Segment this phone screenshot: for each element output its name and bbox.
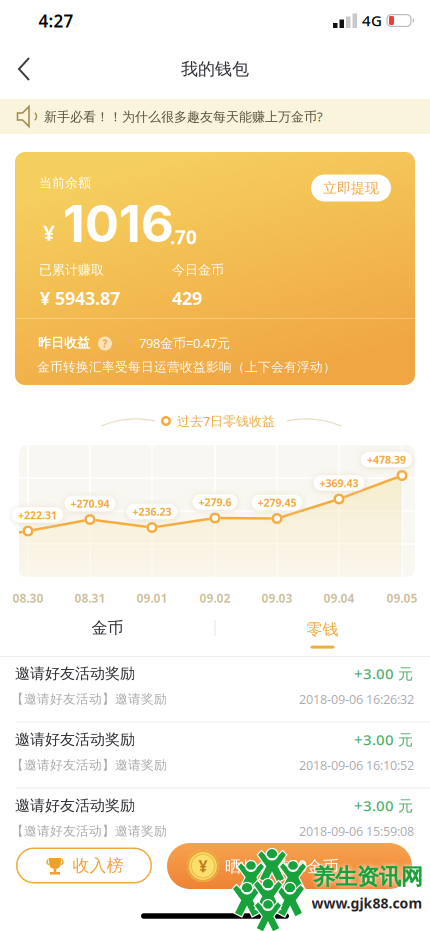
staticText: 09.03: [261, 590, 292, 606]
staticText: 金币: [91, 618, 123, 638]
staticText: 零钱: [306, 619, 338, 640]
button[interactable]: 邀请好友活动奖励: [0, 0, 430, 931]
staticText: +369.43: [319, 476, 358, 490]
staticText: ¥: [198, 855, 207, 877]
button[interactable]: 收入榜: [16, 847, 152, 883]
staticText: 09.01: [136, 590, 167, 606]
staticText: 邀请好友活动奖励: [15, 730, 135, 749]
staticText: 09.05: [386, 590, 417, 606]
staticText: 已累计赚取: [39, 262, 104, 278]
staticText: +236.23: [132, 504, 171, 519]
staticText: 2018-09-06 16:26:32: [299, 690, 414, 708]
staticText: 新手必看！！为什么很多趣友每天能赚上万金币?: [44, 108, 323, 125]
staticText: 昨日收益: [38, 335, 90, 351]
staticText: www.gjk88.com: [311, 893, 422, 913]
staticText: ?: [102, 337, 107, 350]
staticText: 09.04: [323, 590, 354, 606]
staticText: .70: [170, 224, 197, 250]
staticText: ¥ 5943.87: [40, 286, 120, 310]
staticText: 1016: [63, 193, 174, 254]
button[interactable]: 金币: [17, 610, 197, 646]
staticText: 养生资讯网: [313, 863, 423, 891]
staticText: 2018-09-06 16:10:52: [299, 756, 414, 774]
staticText: 4:27: [38, 9, 73, 33]
button[interactable]: 立即提现: [311, 174, 391, 201]
button[interactable]: 邀请好友活动奖励: [0, 0, 430, 931]
staticText: 邀请好友活动奖励: [15, 796, 135, 815]
staticText: 【邀请好友活动】邀请奖励: [11, 691, 167, 707]
staticText: +478.39: [367, 452, 406, 467]
staticText: +3.00 元: [354, 795, 413, 816]
staticText: 08.31: [74, 590, 105, 606]
staticText: 当前余额: [39, 175, 91, 191]
button[interactable]: Help: [98, 336, 112, 350]
staticText: 【邀请好友活动】邀请奖励: [11, 757, 167, 773]
staticText: 邀请好友活动奖励: [15, 664, 135, 683]
staticText: 收入榜: [72, 855, 123, 876]
staticText: +222.31: [18, 508, 57, 522]
staticText: ¥: [43, 218, 55, 247]
staticText: 2018-09-06 15:59:08: [299, 822, 414, 840]
staticText: 4G: [362, 10, 382, 31]
staticText: 晒收入赚50金币: [225, 855, 339, 877]
staticText: 08.30: [12, 590, 43, 606]
button[interactable]: 零钱: [232, 611, 412, 657]
staticText: 金币转换汇率受每日运营收益影响（上下会有浮动）: [37, 359, 336, 375]
button[interactable]: 新手必看！！为什么很多趣友每天能赚上万金币?: [0, 0, 430, 931]
staticText: 今日金币: [172, 262, 224, 278]
staticText: 09.02: [199, 590, 230, 606]
staticText: 立即提现: [323, 179, 379, 197]
staticText: 429: [172, 286, 202, 310]
staticText: +270.94: [70, 496, 109, 511]
button[interactable]: 邀请好友活动奖励: [0, 0, 430, 931]
button[interactable]: ¥: [167, 843, 412, 889]
staticText: 我的钱包: [181, 58, 249, 80]
staticText: 过去7日零钱收益: [177, 412, 275, 430]
staticText: +3.00 元: [354, 663, 413, 684]
staticText: +279.45: [257, 495, 296, 510]
staticText: 798金币=0.47元: [139, 334, 230, 352]
staticText: +279.6: [198, 495, 231, 509]
staticText: +3.00 元: [354, 729, 413, 750]
staticText: 【邀请好友活动】邀请奖励: [11, 823, 167, 839]
button[interactable]: Back: [2, 47, 46, 91]
